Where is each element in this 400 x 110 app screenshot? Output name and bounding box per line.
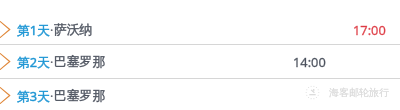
other: Expand day — [0, 21, 10, 38]
button[interactable]: Expand day — [0, 45, 400, 78]
staticText: 14:00 — [293, 53, 326, 70]
staticText: 萨沃纳 — [54, 22, 93, 38]
other: Expand day — [0, 87, 10, 104]
staticText: 海客邮轮旅行 — [329, 86, 389, 99]
staticText: · — [50, 53, 54, 70]
staticText: 第3天 — [17, 87, 50, 104]
staticText: 萨沃纳 — [54, 22, 93, 38]
staticText: · — [50, 21, 54, 38]
staticText: · — [50, 87, 54, 104]
staticText: 第2天 — [17, 53, 50, 70]
staticText: 14:00 — [293, 53, 326, 70]
staticText: 17:00 — [353, 21, 386, 38]
staticText: · — [50, 21, 54, 38]
staticText: 巴塞罗那 — [54, 88, 106, 104]
staticText: 第3天 — [17, 87, 50, 104]
staticText: 巴塞罗那 — [54, 54, 106, 70]
staticText: · — [50, 87, 54, 104]
staticText: 第1天 — [17, 21, 50, 38]
staticText: 第1天 — [17, 21, 50, 38]
staticText: 巴塞罗那 — [54, 54, 106, 70]
staticText: 第2天 — [17, 53, 50, 70]
staticText: · — [50, 53, 54, 70]
button[interactable]: Expand day — [0, 79, 400, 110]
staticText: 17:00 — [353, 21, 386, 38]
other: Expand day — [0, 53, 10, 70]
button[interactable]: Expand day — [0, 0, 400, 44]
staticText: 巴塞罗那 — [54, 88, 106, 104]
